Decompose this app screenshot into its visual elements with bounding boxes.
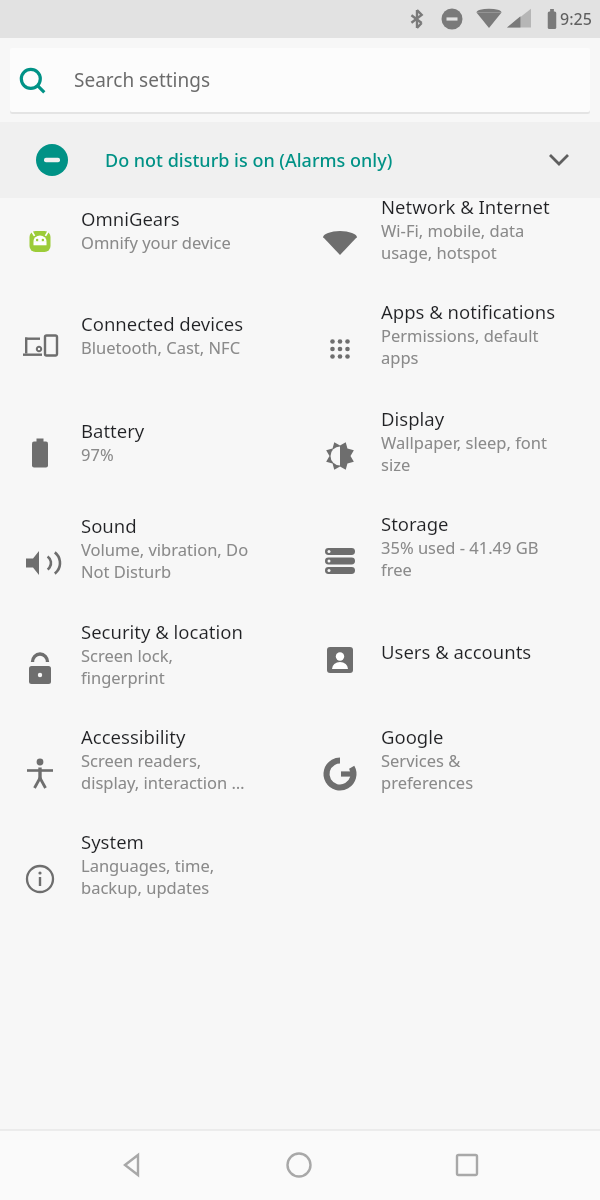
staticText: Security & location: [81, 619, 243, 644]
staticText: Storage: [381, 511, 449, 536]
staticText: Connected devices: [81, 311, 244, 336]
button[interactable]: Recent apps: [432, 1130, 502, 1200]
staticText: Do not disturb is on (Alarms only): [105, 148, 393, 173]
staticText: Accessibility: [81, 724, 186, 749]
staticText: preferences: [381, 771, 474, 793]
staticText: Not Disturb: [81, 560, 172, 582]
staticText: Services &: [381, 749, 461, 771]
staticText: 35% used - 41.49 GB: [381, 536, 539, 558]
staticText: 97%: [81, 443, 114, 465]
staticText: Apps & notifications: [381, 299, 556, 324]
staticText: Languages, time,: [81, 854, 215, 876]
staticText: Google: [381, 724, 444, 749]
button[interactable]: Google: [300, 720, 600, 828]
staticText: backup, updates: [81, 876, 210, 898]
staticText: 9:25: [560, 8, 592, 30]
staticText: Search settings: [74, 67, 211, 93]
button[interactable]: OmniGears: [0, 202, 300, 281]
staticText: free: [381, 558, 412, 580]
staticText: OmniGears: [81, 206, 180, 231]
button[interactable]: Accessibility: [0, 720, 300, 828]
button[interactable]: Do not disturb is on (Alarms only): [0, 122, 600, 198]
button[interactable]: Sound: [0, 509, 300, 617]
staticText: usage, hotspot: [381, 241, 497, 263]
staticText: Display: [381, 406, 445, 431]
staticText: size: [381, 453, 411, 475]
staticText: Wi-Fi, mobile, data: [381, 219, 525, 241]
staticText: Battery: [81, 418, 145, 443]
button[interactable]: Network & Internet: [300, 190, 600, 298]
button[interactable]: Back: [97, 1130, 167, 1200]
staticText: Network & Internet: [381, 194, 550, 219]
staticText: Omnify your device: [81, 231, 231, 253]
staticText: Bluetooth, Cast, NFC: [81, 336, 241, 358]
staticText: display, interaction …: [81, 771, 245, 793]
button[interactable]: Battery: [0, 414, 300, 493]
button[interactable]: System: [0, 825, 300, 933]
button[interactable]: Security & location: [0, 615, 300, 723]
button[interactable]: Users & accounts: [300, 635, 600, 685]
button[interactable]: Search settings: [10, 48, 590, 112]
staticText: Sound: [81, 513, 137, 538]
button[interactable]: Apps & notifications: [300, 295, 600, 403]
staticText: fingerprint: [81, 666, 165, 688]
staticText: Permissions, default: [381, 324, 539, 346]
staticText: System: [81, 829, 144, 854]
button[interactable]: Storage: [300, 507, 600, 615]
button[interactable]: Display: [300, 402, 600, 510]
staticText: Screen lock,: [81, 644, 173, 666]
staticText: Screen readers,: [81, 749, 202, 771]
staticText: Volume, vibration, Do: [81, 538, 249, 560]
button[interactable]: Home: [264, 1130, 334, 1200]
staticText: apps: [381, 346, 419, 368]
button[interactable]: Connected devices: [0, 307, 300, 386]
staticText: Wallpaper, sleep, font: [381, 431, 547, 453]
staticText: Users & accounts: [381, 639, 532, 664]
